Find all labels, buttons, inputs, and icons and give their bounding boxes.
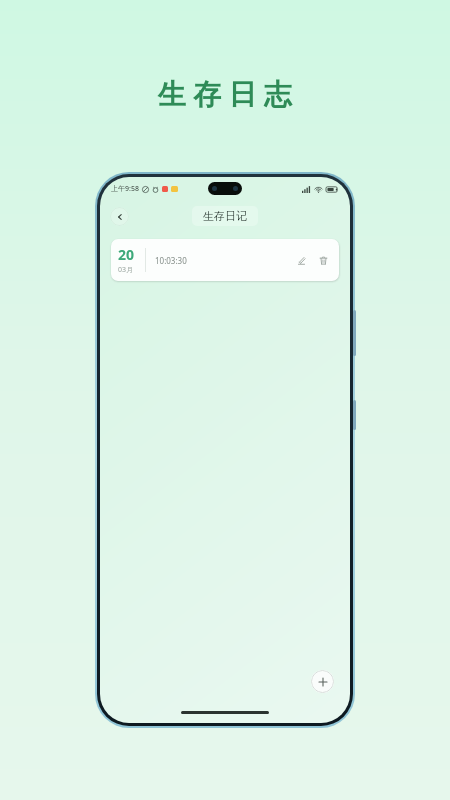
button[interactable]: 20: [111, 239, 339, 281]
staticText: 生存日记: [203, 209, 247, 223]
button[interactable]: 生存日记: [192, 206, 258, 226]
staticText: 03月: [118, 265, 134, 275]
staticText: 上午9:58: [111, 184, 139, 194]
button[interactable]: Edit: [292, 251, 310, 269]
button[interactable]: Delete: [314, 251, 332, 269]
staticText: 10:03:30: [155, 255, 187, 266]
button[interactable]: Add entry: [311, 670, 334, 693]
staticText: 生 存 日 志: [158, 74, 292, 112]
staticText: 20: [118, 245, 135, 264]
button[interactable]: Back: [110, 207, 129, 226]
